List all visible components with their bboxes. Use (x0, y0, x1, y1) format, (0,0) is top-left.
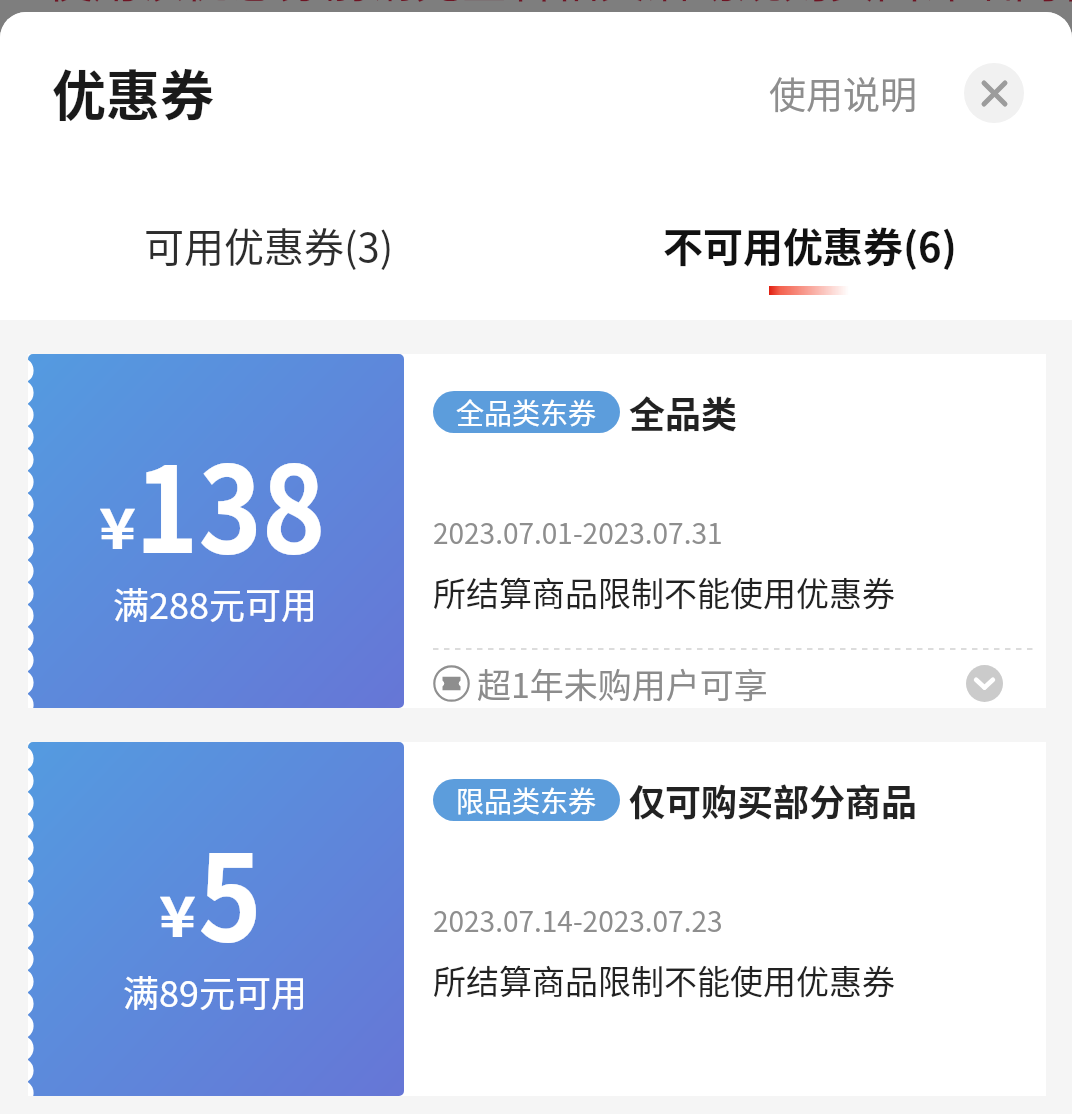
staticText: 仅可购买部分商品 (629, 774, 918, 826)
button[interactable]: 可用优惠券(3) (0, 180, 536, 320)
button[interactable]: 不可用优惠券(6) (536, 180, 1072, 320)
staticText: 不可用优惠券(6) (663, 216, 957, 274)
staticText: 2023.07.14-2023.07.23 (433, 900, 723, 941)
button[interactable]: 138 (28, 354, 1046, 708)
staticText: 所结算商品限制不能使用优惠券 (433, 956, 895, 1004)
staticText: 优惠券 (52, 53, 214, 131)
staticText: 满89元可用 (123, 965, 307, 1017)
staticText: 所结算商品限制不能使用优惠券 (433, 568, 895, 616)
staticText: ¥ (99, 484, 137, 565)
staticText: 限品类东券 (456, 780, 597, 821)
button[interactable]: 使用说明 (757, 54, 929, 132)
staticText: ¥ (159, 872, 197, 953)
staticText: 超1年未购用户可享 (477, 659, 768, 708)
staticText: 使用该优惠券前请先查看相关活动规则页面详细内容 (47, 0, 1072, 11)
button[interactable]: Close (964, 63, 1024, 123)
staticText: 全品类东券 (456, 392, 597, 433)
staticText: 全品类 (629, 386, 738, 438)
staticText: 138 (135, 415, 326, 587)
staticText: 5 (198, 803, 263, 975)
button[interactable]: Expand details (966, 665, 1003, 702)
staticText: 满288元可用 (113, 577, 317, 629)
button[interactable]: 5 (28, 742, 1046, 1096)
staticText: 可用优惠券(3) (144, 216, 394, 274)
staticText: 2023.07.01-2023.07.31 (433, 512, 723, 553)
